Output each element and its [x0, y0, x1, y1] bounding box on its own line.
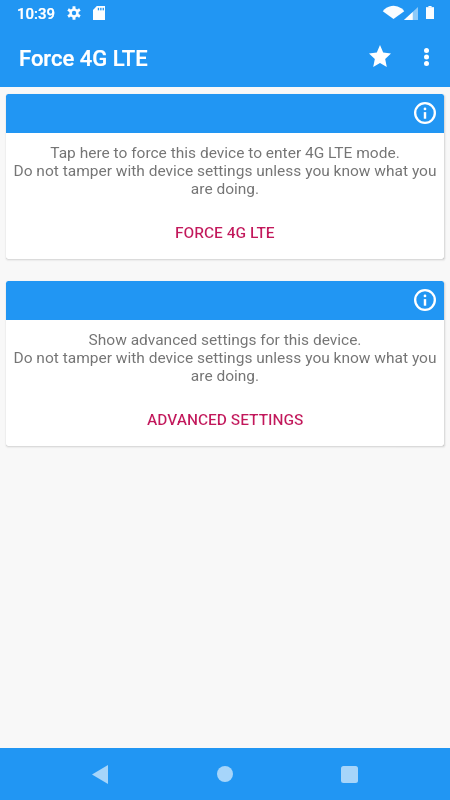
staticText: Show advanced settings for this device. …	[13, 331, 437, 385]
staticText: Tap here to force this device to enter 4…	[13, 144, 437, 198]
button[interactable]: Back	[74, 748, 126, 800]
button[interactable]: Favorite	[358, 35, 404, 81]
staticText: Force 4G LTE	[19, 46, 148, 72]
button[interactable]: ADVANCED SETTINGS	[137, 407, 314, 433]
staticText: ADVANCED SETTINGS	[147, 411, 304, 429]
staticText: 10:39	[17, 5, 56, 23]
button[interactable]: Home	[199, 748, 251, 800]
button[interactable]: FORCE 4G LTE	[165, 220, 285, 246]
button[interactable]: Info	[410, 285, 440, 315]
button[interactable]: Recents	[323, 748, 375, 800]
button[interactable]: Info	[410, 98, 440, 128]
button[interactable]: More options	[403, 35, 449, 81]
staticText: FORCE 4G LTE	[175, 224, 275, 242]
button[interactable]: Info	[6, 94, 444, 259]
button[interactable]: Info	[6, 281, 444, 446]
